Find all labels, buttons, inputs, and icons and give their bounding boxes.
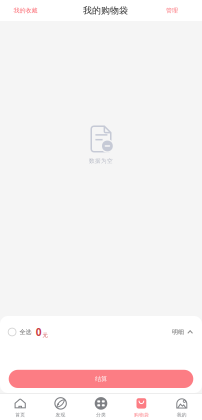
- button[interactable]: 明细: [172, 325, 202, 339]
- button[interactable]: 分类: [81, 393, 121, 420]
- staticText: 明细: [172, 328, 184, 336]
- staticText: 首页: [15, 412, 25, 418]
- staticText: 管理: [166, 7, 178, 14]
- button[interactable]: 我的收藏: [0, 3, 37, 18]
- staticText: 我的: [177, 412, 187, 418]
- staticText: 结算: [95, 375, 107, 383]
- staticText: 分类: [96, 412, 106, 418]
- staticText: 元: [42, 332, 47, 339]
- button[interactable]: 发现: [40, 393, 81, 420]
- staticText: 发现: [56, 412, 66, 418]
- button[interactable]: 结算: [0, 370, 202, 388]
- staticText: 我的收藏: [13, 7, 37, 14]
- button[interactable]: 购物袋: [121, 393, 162, 420]
- button[interactable]: 管理: [166, 3, 202, 18]
- button[interactable]: 首页: [0, 393, 40, 420]
- button[interactable]: 全选: [0, 325, 32, 339]
- staticText: 全选: [20, 328, 32, 336]
- staticText: 我的购物袋: [83, 5, 128, 16]
- staticText: 0: [36, 325, 42, 339]
- staticText: 购物袋: [134, 412, 149, 418]
- staticText: 数据为空: [89, 157, 113, 165]
- button[interactable]: 我的: [162, 393, 202, 420]
